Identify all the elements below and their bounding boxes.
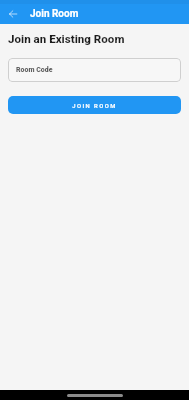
staticText: Room Code (16, 66, 53, 74)
button[interactable]: JOIN ROOM (8, 96, 181, 114)
staticText: JOIN ROOM (72, 103, 117, 110)
button[interactable]: Room Code (8, 58, 181, 82)
button[interactable]: Navigate up (0, 3, 21, 24)
staticText: Join Room (30, 8, 79, 20)
staticText: Join an Existing Room (8, 32, 125, 46)
